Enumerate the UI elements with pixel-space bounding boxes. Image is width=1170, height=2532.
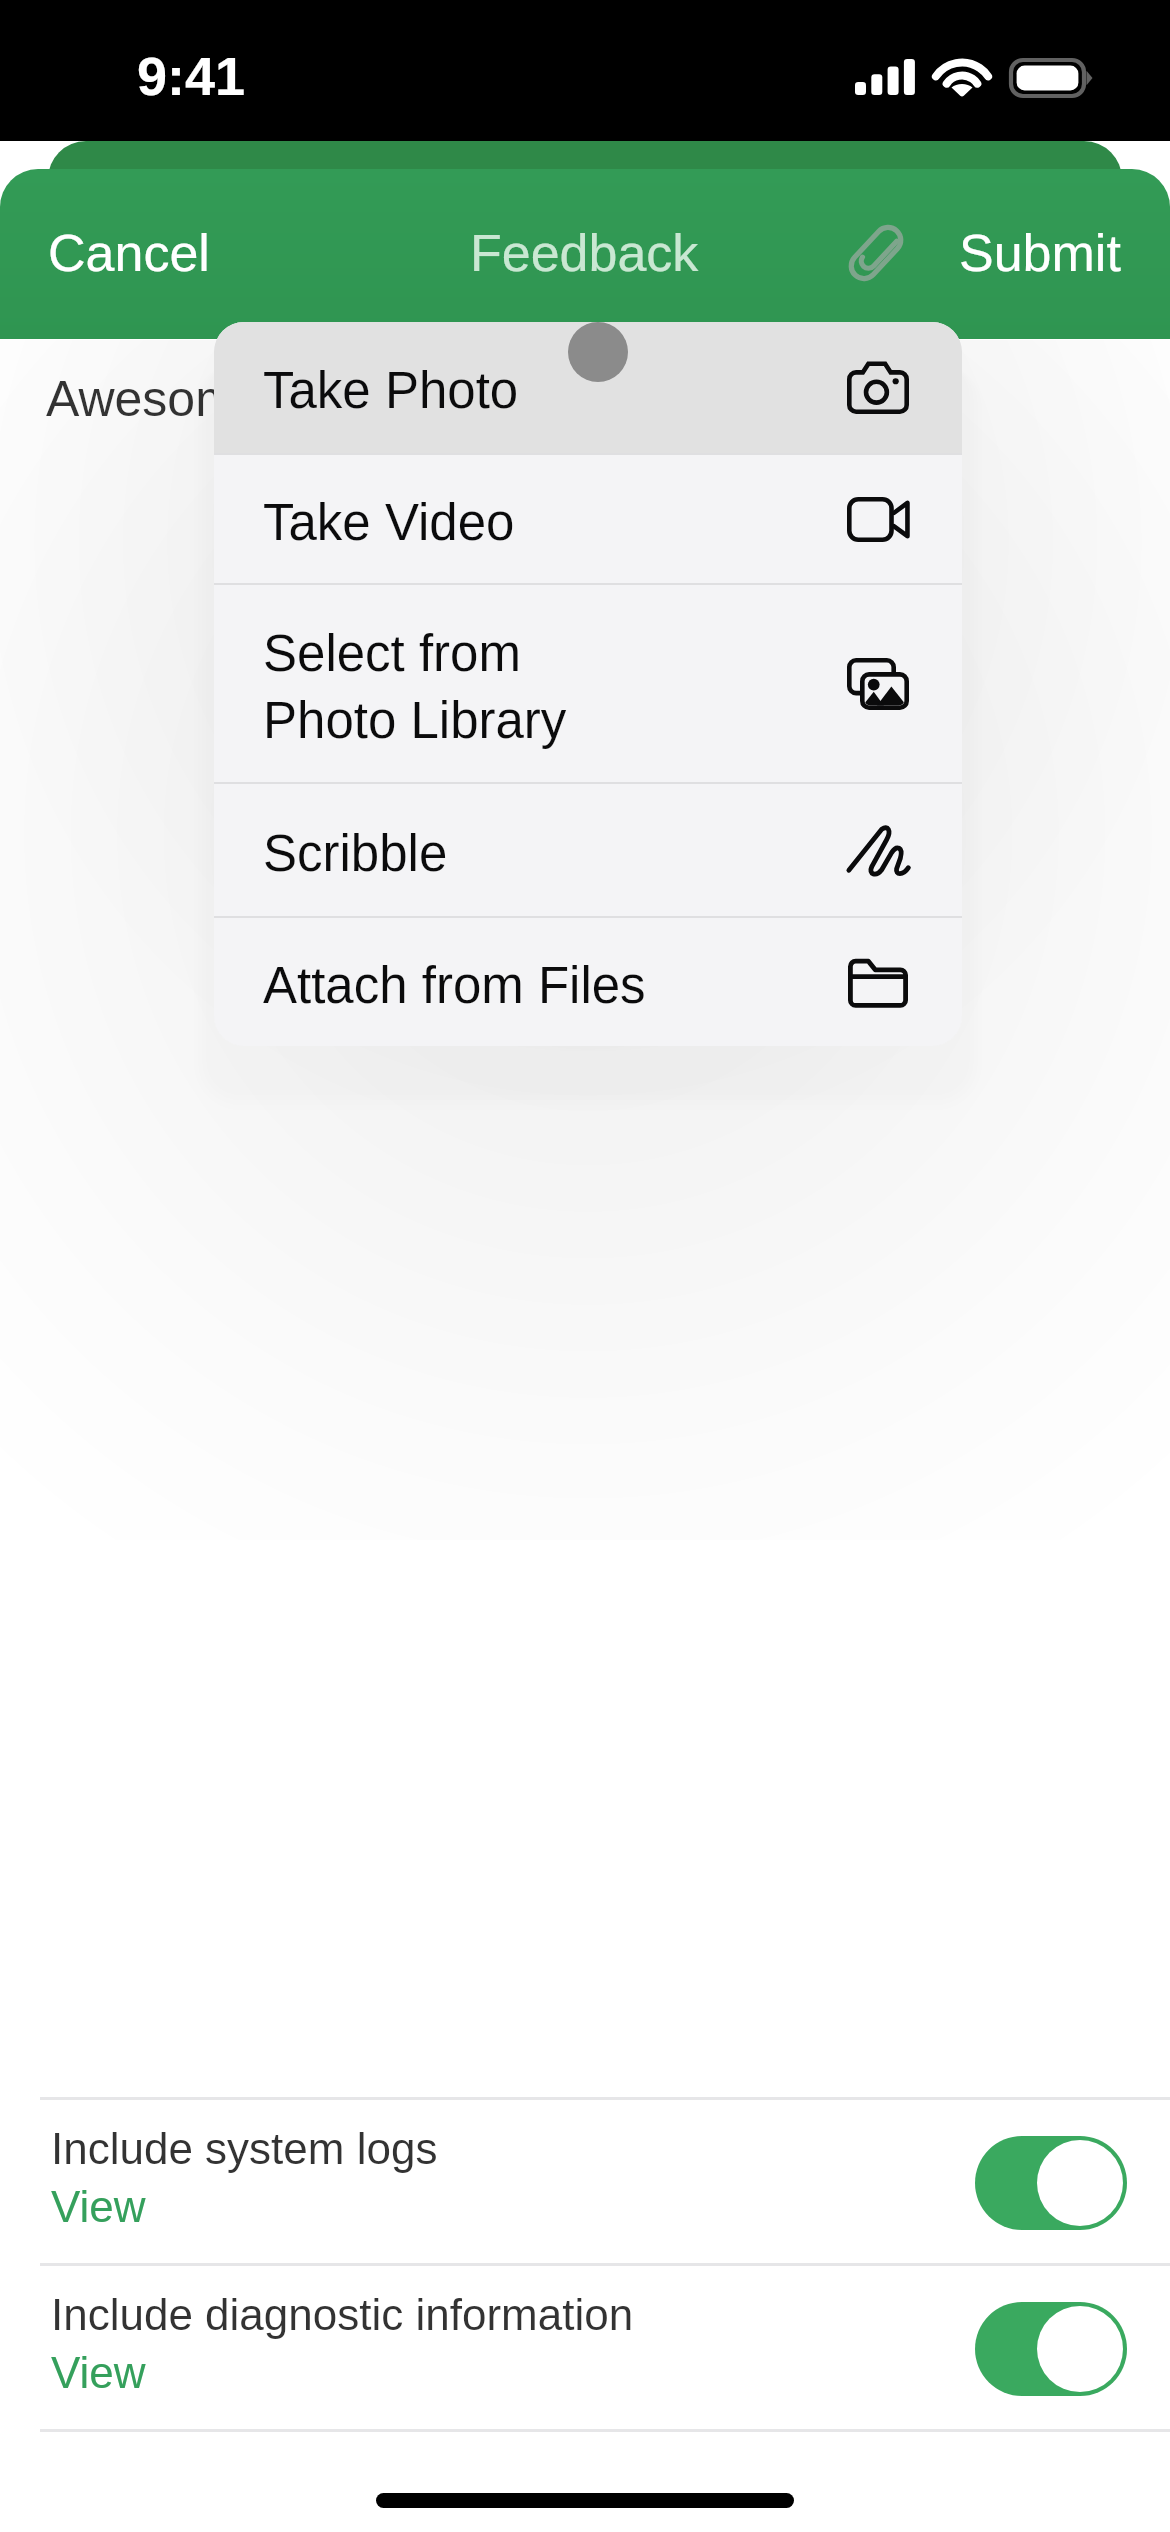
staticText: Take Video [263,494,847,551]
staticText: 9:41 [137,46,246,106]
button[interactable]: View [51,2182,154,2237]
staticText: Select from Photo Library [263,625,847,749]
staticText: Attach from Files [263,957,847,1014]
button[interactable]: Attach from Files [214,918,962,1046]
staticText: Include system logs [51,2124,438,2173]
button[interactable]: Cancel [3,200,255,306]
staticText: Take Photo [263,362,847,419]
staticText: View [51,2182,146,2231]
button[interactable]: Attach file [826,203,926,303]
button[interactable]: Take Photo [214,322,962,453]
button[interactable]: Select from Photo Library [214,585,962,782]
button[interactable]: Scribble [214,784,962,916]
staticText: Awesome [46,371,265,427]
button[interactable]: Feedback [425,200,744,306]
button[interactable]: View [51,2348,154,2403]
staticText: Cancel [48,224,210,282]
button[interactable]: Submit [914,200,1166,306]
button[interactable]: Take Video [214,455,962,583]
staticText: Submit [959,224,1121,282]
staticText: View [51,2348,146,2397]
button[interactable]: Include system logs toggle, on [975,2136,1127,2230]
staticText: Include diagnostic information [51,2290,634,2339]
button[interactable]: Include diagnostic information toggle, o… [975,2302,1127,2396]
staticText: Feedback [470,224,699,282]
staticText: Scribble [263,825,847,882]
